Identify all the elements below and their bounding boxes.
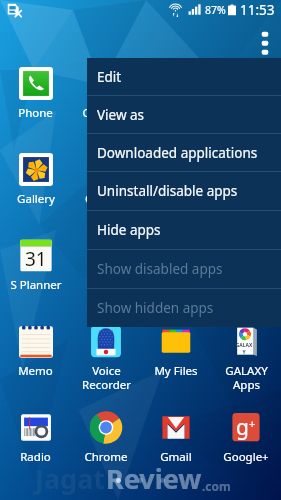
button[interactable]: Camera bbox=[71, 148, 141, 234]
button[interactable]: Voice Recorder bbox=[71, 320, 141, 406]
staticText: Contacts bbox=[82, 105, 130, 121]
staticText: Hide apps bbox=[97, 221, 161, 239]
staticText: Email bbox=[91, 277, 121, 293]
staticText: Gmail bbox=[160, 449, 192, 465]
button[interactable]: Gmail bbox=[141, 406, 211, 492]
staticText: Music bbox=[230, 191, 262, 207]
staticText: Review bbox=[106, 460, 202, 497]
button[interactable]: Hide apps bbox=[87, 211, 281, 249]
staticText: 87% bbox=[205, 3, 226, 17]
button[interactable]: My Files bbox=[141, 320, 211, 406]
button[interactable]: Uninstall/disable apps bbox=[87, 172, 281, 210]
staticText: .com bbox=[202, 478, 231, 494]
button[interactable]: GALAXY bbox=[211, 320, 281, 406]
staticText: Video bbox=[161, 191, 192, 207]
button[interactable]: Calculator bbox=[211, 234, 281, 320]
staticText: 11:53 bbox=[240, 1, 275, 19]
button[interactable]: Contacts bbox=[71, 62, 141, 148]
button[interactable]: Radio bbox=[0, 406, 71, 492]
staticText: Radio bbox=[20, 449, 51, 465]
staticText: View as bbox=[97, 106, 145, 124]
staticText: g bbox=[236, 413, 249, 442]
staticText: Gallery bbox=[17, 191, 55, 207]
staticText: S Planner bbox=[10, 277, 62, 293]
button[interactable]: Show disabled apps bbox=[87, 250, 281, 288]
button[interactable]: Messages bbox=[141, 62, 211, 148]
staticText: Jagat bbox=[35, 460, 106, 497]
button[interactable]: Video bbox=[141, 148, 211, 234]
staticText: Memo bbox=[18, 363, 53, 379]
staticText: My Files bbox=[154, 363, 198, 379]
staticText: 31 bbox=[25, 246, 47, 272]
staticText: Show disabled apps bbox=[97, 260, 223, 278]
staticText: GALAXY bbox=[235, 342, 253, 356]
button[interactable]: Edit bbox=[87, 58, 281, 95]
button[interactable]: Music bbox=[211, 148, 281, 234]
staticText: Downloaded applications bbox=[97, 144, 258, 162]
button[interactable]: Internet bbox=[211, 62, 281, 148]
staticText: + bbox=[249, 416, 256, 431]
button[interactable]: Show hidden apps bbox=[87, 289, 281, 327]
button[interactable]: Gallery bbox=[0, 148, 71, 234]
staticText: Edit bbox=[97, 68, 122, 86]
staticText: Chrome bbox=[84, 449, 128, 465]
staticText: Calculator bbox=[219, 277, 274, 293]
button[interactable]: Memo bbox=[0, 320, 71, 406]
button[interactable]: Email bbox=[71, 234, 141, 320]
staticText: Camera bbox=[85, 191, 127, 207]
staticText: Google+ bbox=[223, 449, 269, 465]
staticText: Clock bbox=[162, 277, 191, 293]
staticText: GALAXY Apps bbox=[225, 363, 268, 393]
staticText: Phone bbox=[18, 105, 53, 121]
button[interactable]: Phone bbox=[0, 62, 71, 148]
button[interactable]: g bbox=[211, 406, 281, 492]
button[interactable]: Clock bbox=[141, 234, 211, 320]
button[interactable]: Chrome bbox=[71, 406, 141, 492]
button[interactable]: More options bbox=[252, 22, 278, 58]
staticText: Voice Recorder bbox=[82, 363, 131, 393]
button[interactable]: Downloaded applications bbox=[87, 134, 281, 171]
staticText: Uninstall/disable apps bbox=[97, 182, 238, 200]
staticText: Show hidden apps bbox=[97, 299, 214, 317]
button[interactable]: View as bbox=[87, 96, 281, 133]
button[interactable]: 31 bbox=[0, 234, 71, 320]
